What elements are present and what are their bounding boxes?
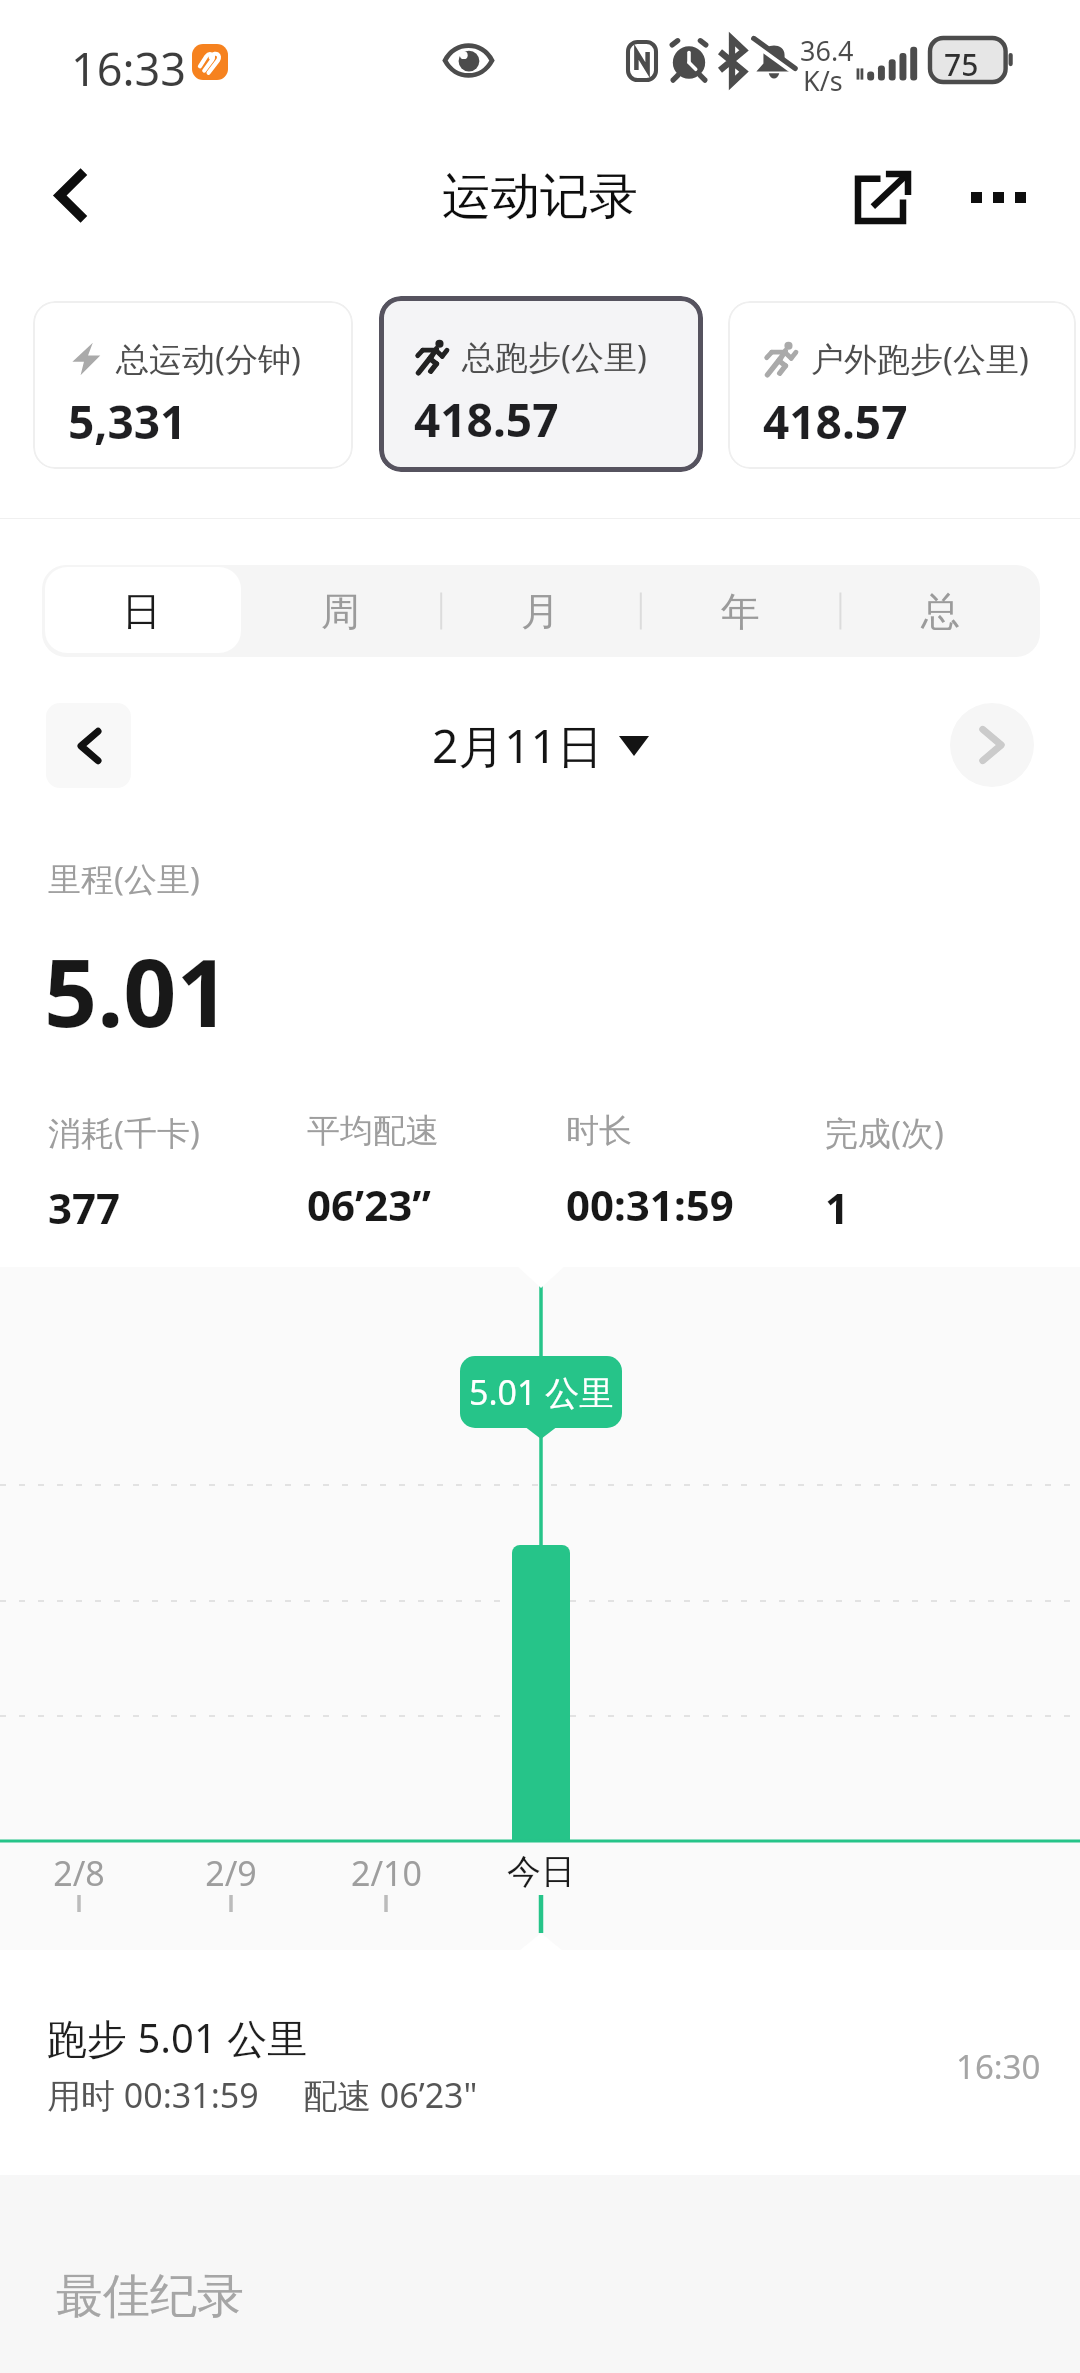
staticText: 里程(公里) xyxy=(48,856,200,901)
staticText: 年 xyxy=(721,587,760,636)
staticText: 跑步 5.01 公里 xyxy=(47,2010,308,2065)
staticText: 2/8 xyxy=(53,1850,105,1896)
staticText: 418.57 xyxy=(414,388,559,451)
button[interactable]: 年 xyxy=(640,565,840,657)
button[interactable]: 月 xyxy=(440,565,640,657)
staticText: 总跑步(公里) xyxy=(462,334,647,379)
staticText: 2月11日 xyxy=(432,714,603,777)
staticText: 月 xyxy=(521,587,560,636)
staticText: 运动记录 xyxy=(442,166,638,228)
staticText: 户外跑步(公里) xyxy=(811,336,1029,381)
button[interactable]: 跑步 5.01 公里 xyxy=(0,1950,1080,2175)
staticText: 最佳纪录 xyxy=(56,2267,244,2326)
staticText: 总运动(分钟) xyxy=(116,336,301,381)
staticText: 平均配速 xyxy=(307,1110,439,1152)
staticText: 00:31:59 xyxy=(566,1176,734,1233)
staticText: 今日 xyxy=(507,1850,575,1893)
button[interactable]: 总 xyxy=(840,565,1040,657)
staticText: 消耗(千卡) xyxy=(48,1110,200,1155)
button[interactable]: 总跑步(公里) xyxy=(379,296,703,472)
staticText: 完成(次) xyxy=(825,1110,944,1155)
staticText: 2/10 xyxy=(351,1850,422,1896)
staticText: 日 xyxy=(122,587,161,636)
button[interactable]: Back xyxy=(26,150,116,240)
button[interactable]: Next day xyxy=(950,703,1034,787)
button[interactable]: 户外跑步(公里) xyxy=(728,301,1076,469)
staticText: 2/9 xyxy=(205,1850,257,1896)
staticText: 16:30 xyxy=(956,2044,1041,2089)
staticText: 总 xyxy=(921,587,960,636)
staticText: 5.01 xyxy=(44,928,230,1055)
button[interactable]: More options xyxy=(952,162,1044,232)
staticText: 06’23” xyxy=(307,1176,431,1233)
staticText: 5.01 公里 xyxy=(469,1369,614,1415)
staticText: 5,331 xyxy=(68,390,187,453)
staticText: 75 xyxy=(944,44,979,85)
staticText: 36.4 xyxy=(800,32,854,69)
staticText: K/s xyxy=(803,62,843,99)
staticText: 时长 xyxy=(566,1110,632,1152)
button[interactable]: 日 xyxy=(42,565,241,657)
button[interactable]: Previous day xyxy=(46,703,131,788)
button[interactable]: 2月11日 xyxy=(432,714,649,777)
staticText: 16:33 xyxy=(71,38,187,99)
staticText: 418.57 xyxy=(763,390,908,453)
staticText: 用时 00:31:59 配速 06’23" xyxy=(47,2072,478,2118)
button[interactable]: 总运动(分钟) xyxy=(33,301,353,469)
button[interactable]: 周 xyxy=(241,565,440,657)
staticText: 周 xyxy=(321,587,360,636)
staticText: 377 xyxy=(48,1179,121,1236)
button[interactable]: Share xyxy=(838,162,928,232)
staticText: 1 xyxy=(825,1179,850,1236)
